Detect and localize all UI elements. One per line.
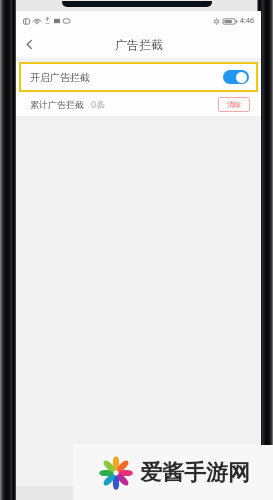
staticText: 爱酱手游网: [140, 459, 250, 487]
button[interactable]: Back: [16, 31, 42, 57]
button[interactable]: 开启广告拦截: [19, 62, 258, 92]
button[interactable]: 清除: [218, 97, 250, 112]
staticText: 清除: [227, 100, 241, 109]
staticText: 0条: [91, 98, 106, 110]
staticText: 广告拦截: [115, 37, 163, 52]
staticText: 开启广告拦截: [30, 71, 90, 84]
staticText: 4:46: [240, 16, 254, 26]
staticText: 累计广告拦截: [30, 99, 84, 110]
